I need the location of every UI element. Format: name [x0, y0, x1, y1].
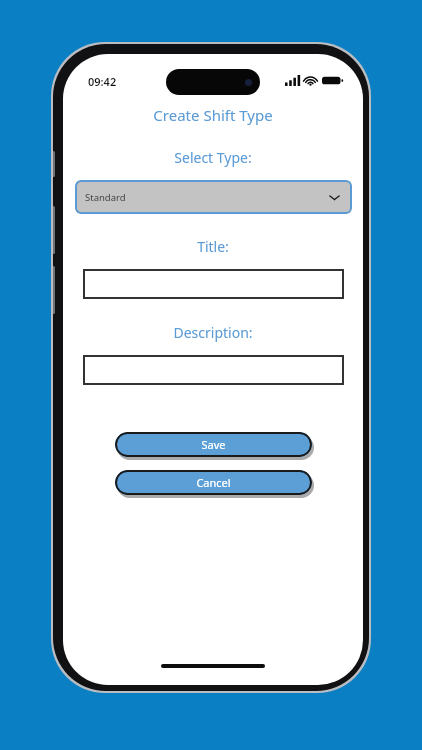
staticText: 09:42 — [88, 74, 117, 89]
button[interactable]: Save — [115, 432, 312, 457]
button[interactable]: Cancel — [115, 470, 312, 495]
staticText: Title: — [197, 237, 229, 256]
staticText: Save — [201, 437, 226, 452]
staticText: Cancel — [196, 475, 231, 490]
staticText: Description: — [173, 323, 253, 342]
button[interactable] — [83, 355, 344, 385]
staticText: Standard — [85, 191, 126, 204]
staticText: Select Type: — [174, 148, 252, 167]
button[interactable] — [83, 269, 344, 299]
button[interactable]: Standard — [75, 180, 352, 214]
staticText: Create Shift Type — [153, 105, 273, 125]
